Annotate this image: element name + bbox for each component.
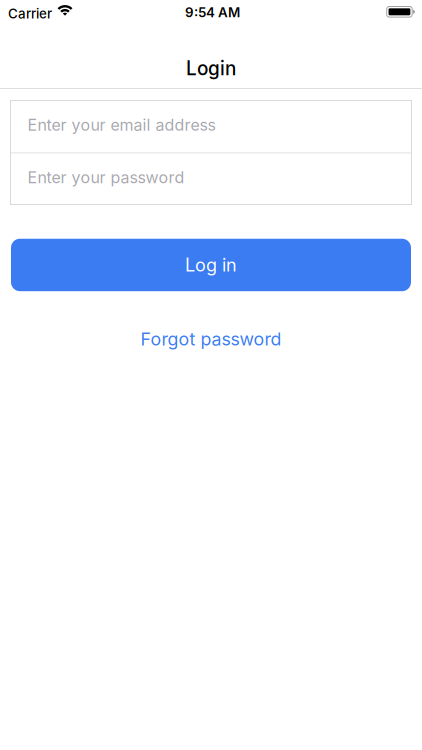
staticText: Login — [186, 57, 236, 80]
button[interactable]: Enter your email address — [10, 100, 411, 152]
staticText: Log in — [185, 254, 237, 276]
staticText: Enter your password — [27, 168, 184, 187]
staticText: Carrier — [8, 5, 52, 22]
button[interactable]: Enter your password — [10, 153, 411, 204]
button[interactable]: Forgot password — [140, 328, 281, 350]
button[interactable]: Log in — [11, 239, 411, 291]
staticText: 9:54 AM — [185, 4, 240, 20]
staticText: Forgot password — [140, 328, 281, 350]
staticText: Enter your email address — [27, 115, 215, 135]
